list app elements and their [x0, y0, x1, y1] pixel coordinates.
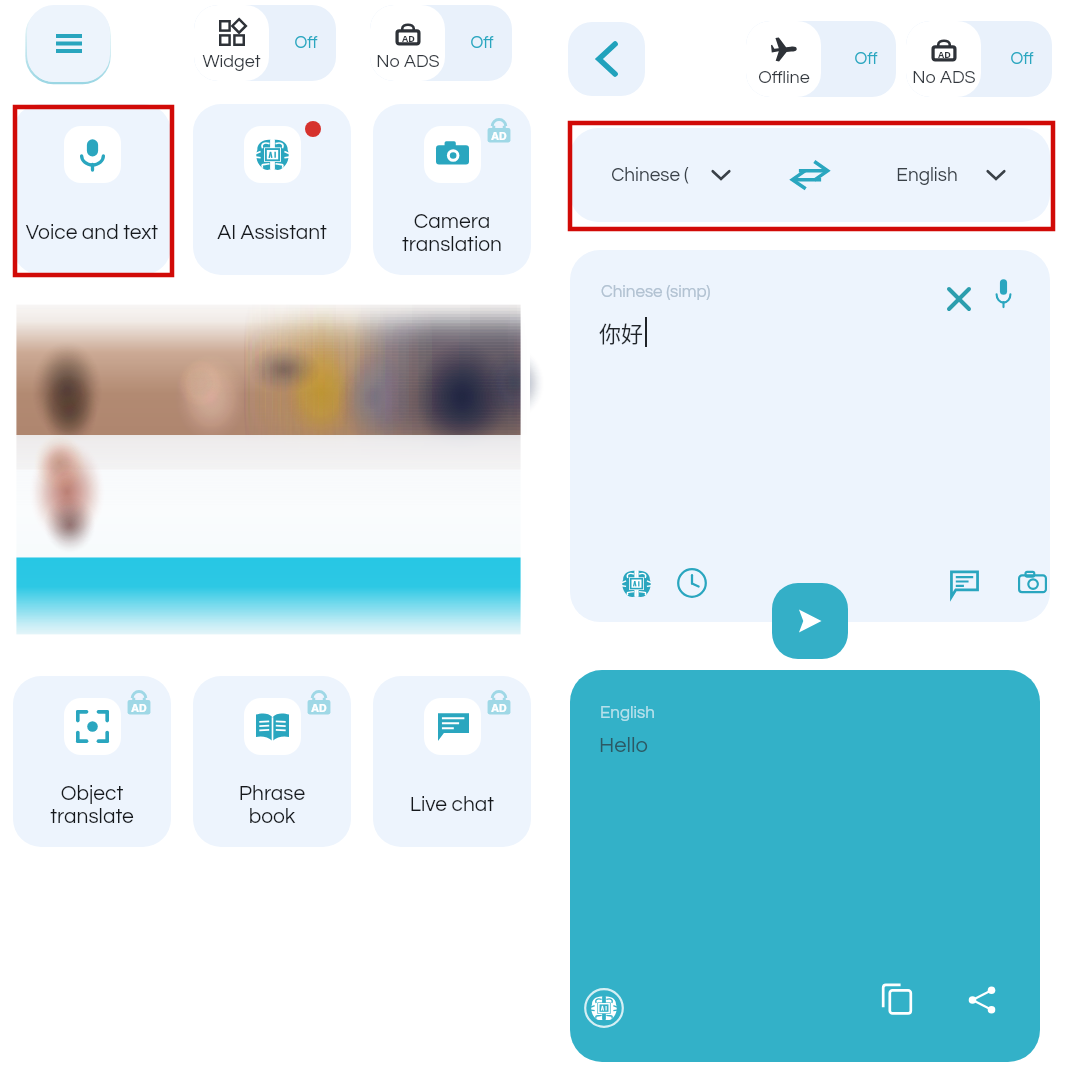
staticText: AD: [131, 700, 147, 715]
staticText: English: [896, 165, 958, 185]
staticText: Off: [470, 34, 494, 52]
staticText: Voice and text: [13, 222, 171, 244]
staticText: Off: [1010, 50, 1034, 68]
staticText: Off: [854, 50, 878, 68]
staticText: AD: [402, 32, 415, 44]
button[interactable]: AI: [614, 561, 658, 605]
staticText: Offline: [758, 68, 810, 87]
staticText: No ADS: [376, 52, 440, 71]
button[interactable]: AI: [574, 978, 634, 1038]
button[interactable]: Voice input: [982, 272, 1024, 314]
button[interactable]: AI Assistant: [193, 104, 351, 275]
staticText: AD: [311, 700, 327, 715]
button[interactable]: AD: [370, 5, 512, 81]
button[interactable]: AD: [906, 21, 1052, 97]
staticText: Object translate: [13, 783, 171, 828]
button[interactable]: Chinese (: [570, 128, 770, 222]
staticText: Off: [294, 34, 318, 52]
button[interactable]: Copy: [875, 977, 919, 1021]
staticText: 你好: [599, 316, 644, 348]
staticText: Camera translation: [373, 211, 531, 256]
button[interactable]: History: [670, 561, 714, 605]
staticText: No ADS: [912, 68, 976, 87]
button[interactable]: Camera translation: [373, 104, 531, 275]
staticText: Hello: [599, 734, 649, 757]
button[interactable]: Object translate: [13, 676, 171, 847]
staticText: Phrase book: [193, 783, 351, 828]
button[interactable]: Phrase book: [193, 676, 351, 847]
button[interactable]: Voice and text: [13, 104, 171, 275]
staticText: AD: [491, 700, 507, 715]
button[interactable]: Offline: [746, 21, 896, 97]
staticText: Widget: [202, 52, 261, 71]
staticText: Chinese (: [611, 165, 689, 185]
button[interactable]: Share: [960, 978, 1004, 1022]
button[interactable]: Translate: [772, 583, 848, 659]
staticText: Chinese (simp): [601, 283, 711, 301]
button[interactable]: Swap languages: [770, 128, 850, 222]
button[interactable]: Clear: [938, 278, 980, 320]
button[interactable]: English: [850, 128, 1050, 222]
staticText: AD: [938, 48, 951, 60]
button[interactable]: Camera: [1010, 561, 1050, 605]
staticText: AD: [491, 128, 507, 143]
staticText: Live chat: [373, 794, 531, 816]
button[interactable]: Conversation: [942, 561, 986, 605]
staticText: AI Assistant: [193, 222, 351, 244]
button[interactable]: Back: [568, 22, 645, 96]
button[interactable]: Menu: [27, 5, 110, 82]
staticText: English: [600, 704, 655, 722]
button[interactable]: Live chat: [373, 676, 531, 847]
button[interactable]: Widget: [194, 5, 336, 81]
